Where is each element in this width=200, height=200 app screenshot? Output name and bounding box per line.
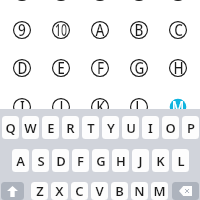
button[interactable]: J bbox=[132, 149, 149, 172]
staticText: I bbox=[148, 119, 153, 137]
button[interactable]: M bbox=[151, 182, 168, 200]
button[interactable]: 8 bbox=[168, 0, 188, 2]
button[interactable]: D bbox=[52, 149, 69, 172]
button[interactable]: T bbox=[82, 116, 99, 139]
button[interactable]: C bbox=[168, 20, 188, 40]
staticText: H bbox=[173, 56, 184, 76]
button[interactable]: 9 bbox=[12, 20, 32, 40]
staticText: R bbox=[66, 119, 75, 137]
button[interactable]: Z bbox=[31, 182, 48, 200]
button[interactable]: G bbox=[129, 58, 149, 78]
staticText: 9 bbox=[18, 18, 26, 38]
button[interactable]: G bbox=[92, 149, 109, 172]
button[interactable]: I bbox=[12, 97, 32, 117]
staticText: D bbox=[56, 152, 66, 170]
staticText: N bbox=[134, 182, 145, 200]
staticText: J bbox=[59, 95, 63, 115]
button[interactable]: F bbox=[90, 58, 110, 78]
button[interactable]: F bbox=[72, 149, 89, 172]
button[interactable]: S bbox=[32, 149, 49, 172]
button[interactable]: X bbox=[51, 182, 68, 200]
staticText: B bbox=[115, 182, 124, 200]
button[interactable]: E bbox=[42, 116, 59, 139]
staticText: D bbox=[17, 56, 28, 76]
button[interactable]: I bbox=[142, 116, 159, 139]
staticText: G bbox=[96, 152, 106, 170]
staticText: A bbox=[16, 152, 25, 170]
staticText: Y bbox=[107, 119, 115, 137]
staticText: A bbox=[95, 18, 105, 38]
staticText: K bbox=[96, 95, 105, 115]
button[interactable]: P bbox=[182, 116, 199, 139]
button[interactable]: C bbox=[71, 182, 88, 200]
staticText: K bbox=[156, 152, 165, 170]
button[interactable]: A bbox=[12, 149, 29, 172]
button[interactable]: U bbox=[122, 116, 139, 139]
staticText: C bbox=[174, 18, 183, 38]
staticText: H bbox=[116, 152, 126, 170]
staticText: M bbox=[172, 95, 184, 115]
staticText: I bbox=[20, 95, 25, 115]
staticText: L bbox=[135, 95, 143, 115]
button[interactable]: B bbox=[111, 182, 128, 200]
button[interactable]: V bbox=[91, 182, 108, 200]
staticText: G bbox=[134, 56, 145, 76]
button[interactable]: 7 bbox=[129, 0, 149, 2]
button[interactable]: B bbox=[129, 20, 149, 40]
button[interactable]: N bbox=[131, 182, 148, 200]
staticText: X bbox=[55, 182, 64, 200]
button[interactable]: 5 bbox=[51, 0, 71, 2]
staticText: J bbox=[138, 152, 143, 170]
button[interactable]: M bbox=[168, 97, 188, 117]
button[interactable]: D bbox=[12, 58, 32, 78]
staticText: Z bbox=[36, 182, 44, 200]
button[interactable]: 6 bbox=[90, 0, 110, 2]
button[interactable]: J bbox=[51, 97, 71, 117]
button[interactable]: 4 bbox=[12, 0, 32, 2]
button[interactable]: K bbox=[152, 149, 169, 172]
button[interactable]: Delete bbox=[172, 182, 199, 200]
button[interactable]: W bbox=[22, 116, 39, 139]
button[interactable]: 10 bbox=[51, 20, 71, 40]
button[interactable]: A bbox=[90, 20, 110, 40]
staticText: C bbox=[75, 182, 84, 200]
button[interactable]: H bbox=[168, 58, 188, 78]
staticText: L bbox=[177, 152, 185, 170]
staticText: P bbox=[187, 119, 195, 137]
staticText: V bbox=[95, 182, 104, 200]
staticText: O bbox=[165, 119, 176, 137]
button[interactable]: L bbox=[172, 149, 189, 172]
staticText: U bbox=[126, 119, 136, 137]
staticText: T bbox=[87, 119, 95, 137]
button[interactable]: Y bbox=[102, 116, 119, 139]
staticText: F bbox=[77, 152, 84, 170]
staticText: 10 bbox=[55, 18, 67, 38]
button[interactable]: R bbox=[62, 116, 79, 139]
staticText: M bbox=[153, 182, 166, 200]
staticText: F bbox=[97, 56, 104, 76]
button[interactable]: O bbox=[162, 116, 179, 139]
staticText: E bbox=[47, 119, 55, 137]
button[interactable]: L bbox=[129, 97, 149, 117]
button[interactable]: Q bbox=[2, 116, 19, 139]
staticText: S bbox=[37, 152, 45, 170]
button[interactable]: E bbox=[51, 58, 71, 78]
button[interactable]: K bbox=[90, 97, 110, 117]
button[interactable]: Shift bbox=[1, 182, 24, 200]
staticText: W bbox=[24, 119, 37, 137]
staticText: E bbox=[57, 56, 65, 76]
staticText: B bbox=[134, 18, 144, 38]
button[interactable]: H bbox=[112, 149, 129, 172]
staticText: Q bbox=[5, 119, 16, 137]
